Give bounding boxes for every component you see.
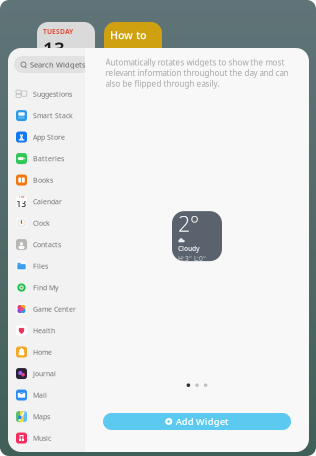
staticText: Clock: [33, 218, 50, 228]
staticText: Suggestions: [33, 89, 72, 99]
button[interactable]: Search Widgets: [14, 56, 91, 73]
button[interactable]: Home: [8, 341, 85, 363]
button[interactable]: Contacts: [8, 234, 85, 255]
staticText: Maps: [33, 412, 50, 421]
button[interactable]: Journal: [8, 363, 85, 384]
button[interactable]: Books: [8, 169, 85, 191]
staticText: Files: [33, 261, 48, 271]
button[interactable]: Health: [8, 320, 85, 341]
button[interactable]: Find My: [8, 277, 85, 298]
staticText: Cloudy: [178, 244, 200, 253]
staticText: Journal: [33, 369, 56, 378]
staticText: Home: [33, 347, 52, 357]
button[interactable]: Music: [8, 427, 85, 449]
button[interactable]: Suggestions: [8, 83, 85, 105]
staticText: 13: [43, 36, 65, 61]
button[interactable]: TUE: [8, 191, 85, 212]
staticText: Books: [33, 175, 53, 185]
staticText: Game Center: [33, 304, 76, 314]
staticText: TUE: [19, 195, 24, 199]
staticText: Health: [33, 326, 55, 335]
button[interactable]: Files: [8, 255, 85, 277]
staticText: Add Widget: [176, 415, 229, 428]
button[interactable]: Smart Stack: [8, 105, 85, 126]
button[interactable]: Clock: [8, 212, 85, 234]
staticText: 13: [16, 199, 26, 209]
staticText: Search Widgets: [30, 59, 86, 70]
button[interactable]: Add Widget: [103, 413, 291, 430]
button[interactable]: Mail: [8, 384, 85, 406]
button[interactable]: Batteries: [8, 148, 85, 169]
staticText: Music: [33, 433, 51, 443]
staticText: Find My: [33, 283, 59, 292]
staticText: Calendar: [33, 197, 62, 206]
button[interactable]: Game Center: [8, 298, 85, 320]
staticText: Contacts: [33, 240, 61, 249]
staticText: Batteries: [33, 154, 64, 163]
button[interactable]: Maps: [8, 406, 85, 427]
staticText: App Store: [33, 132, 65, 142]
staticText: H:3° L:0°: [178, 254, 206, 263]
staticText: Smart Stack: [33, 111, 73, 120]
staticText: 2°: [178, 209, 199, 238]
staticText: How to: [110, 28, 147, 42]
button[interactable]: App Store: [8, 126, 85, 148]
staticText: Automatically rotates widgets to show th…: [105, 57, 288, 89]
staticText: Mail: [33, 390, 47, 400]
staticText: TUESDAY: [43, 27, 73, 36]
